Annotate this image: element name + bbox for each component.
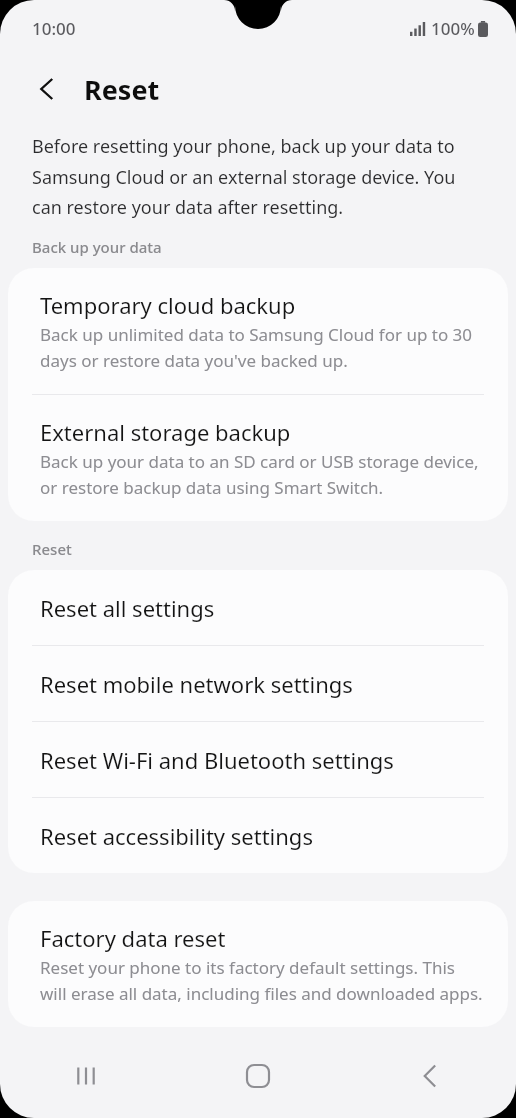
button[interactable]: Home	[172, 1034, 344, 1118]
button[interactable]: External storage backup	[8, 395, 508, 521]
button[interactable]: Back	[344, 1034, 516, 1118]
button[interactable]: Reset accessibility settings	[8, 798, 508, 873]
staticText: 100%	[431, 17, 475, 40]
staticText: Reset	[32, 539, 72, 559]
button[interactable]: Factory data reset	[8, 901, 508, 1027]
button[interactable]: Reset Wi-Fi and Bluetooth settings	[8, 722, 508, 797]
staticText: External storage backup	[40, 417, 291, 447]
staticText: Temporary cloud backup	[40, 290, 296, 320]
staticText: Reset accessibility settings	[40, 821, 313, 851]
button[interactable]: Recent apps	[0, 1034, 172, 1118]
staticText: Factory data reset	[40, 923, 226, 953]
staticText: Back up unlimited data to Samsung Cloud …	[40, 323, 484, 372]
staticText: Back up your data	[32, 237, 162, 257]
staticText: Before resetting your phone, back up you…	[32, 134, 486, 219]
staticText: Reset mobile network settings	[40, 669, 353, 699]
button[interactable]: Reset all settings	[8, 570, 508, 645]
staticText: Reset all settings	[40, 593, 215, 623]
staticText: Back up your data to an SD card or USB s…	[40, 450, 484, 499]
staticText: 10:00	[32, 17, 76, 40]
button[interactable]: Temporary cloud backup	[8, 268, 508, 394]
button[interactable]: Reset mobile network settings	[8, 646, 508, 721]
staticText: Reset	[84, 71, 160, 108]
staticText: Reset your phone to its factory default …	[40, 956, 484, 1005]
staticText: Reset Wi-Fi and Bluetooth settings	[40, 745, 394, 775]
button[interactable]: Back	[30, 72, 64, 106]
